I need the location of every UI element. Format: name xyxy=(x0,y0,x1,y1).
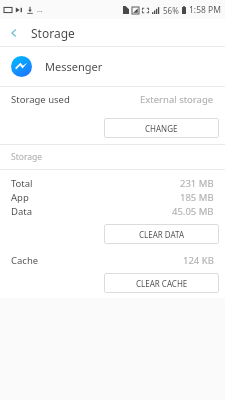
staticText: ... xyxy=(37,5,43,15)
staticText: 185 MB xyxy=(180,191,214,204)
staticText: 124 KB xyxy=(183,254,214,267)
staticText: Data xyxy=(11,205,33,218)
staticText: 56% xyxy=(163,5,179,16)
staticText: 231 MB xyxy=(180,177,214,190)
staticText: Storage used xyxy=(11,93,70,106)
staticText: Storage xyxy=(11,151,43,163)
staticText: CHANGE xyxy=(145,123,178,134)
staticText: External storage xyxy=(140,93,214,106)
staticText: Total xyxy=(11,177,33,190)
staticText: CLEAR CACHE xyxy=(136,278,188,289)
button[interactable]: Back xyxy=(0,19,27,46)
staticText: Messenger xyxy=(45,59,103,74)
staticText: Storage xyxy=(31,25,75,41)
staticText: CLEAR DATA xyxy=(139,229,185,240)
staticText: Cache xyxy=(11,254,39,267)
staticText: 45.05 MB xyxy=(172,205,214,218)
button[interactable]: CLEAR CACHE xyxy=(104,273,219,293)
button[interactable]: CHANGE xyxy=(104,118,219,138)
staticText: 1:58 PM xyxy=(189,4,221,16)
button[interactable]: Messenger xyxy=(0,47,225,86)
button[interactable]: Storage used xyxy=(0,87,225,112)
staticText: App xyxy=(11,191,29,204)
button[interactable]: CLEAR DATA xyxy=(104,224,219,244)
